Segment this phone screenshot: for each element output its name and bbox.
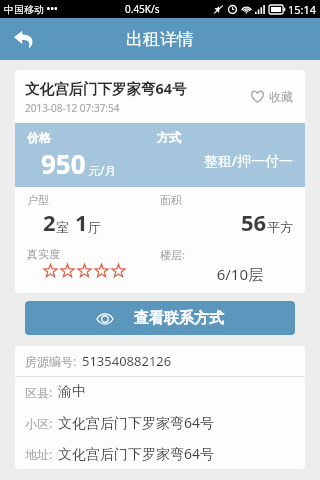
button[interactable]: 房源编号: [15,346,305,376]
staticText: 文化宫后门下罗家弯64号 [58,444,215,463]
staticText: 2 [43,207,56,237]
staticText: 1 [75,207,88,237]
staticText: 楼层: [160,247,185,262]
staticText: 2013-08-12 07:37:54 [25,101,120,115]
staticText: 出租详情 [126,29,194,50]
button[interactable]: 区县: [15,377,305,407]
staticText: 价格 [27,130,51,145]
staticText: 真实度 [27,247,60,261]
staticText: 0.45K/s [125,2,160,16]
staticText: 元/月 [88,162,117,178]
button[interactable]: 地址: [15,438,305,469]
staticText: 室 [56,219,69,235]
button[interactable]: 小区: [15,407,305,438]
staticText: 小区: [25,415,53,431]
staticText: 56 [241,207,267,237]
button[interactable]: 查看联系方式 [25,301,295,335]
staticText: 中国移动 ••• [4,2,58,16]
staticText: 15:14 [288,2,317,17]
staticText: 文化宫后门下罗家弯64号 [25,78,187,98]
button[interactable]: Back [6,21,42,57]
staticText: 整租/押一付一 [157,151,293,170]
staticText: 平方 [267,219,293,235]
staticText: 文化宫后门下罗家弯64号 [58,413,215,432]
staticText: 方式 [157,130,181,145]
staticText: 950 [41,146,86,181]
staticText: 6/10层 [160,264,263,284]
staticText: 区县: [25,384,53,400]
staticText: 户型 [27,193,49,207]
staticText: 513540882126 [82,352,172,370]
staticText: 查看联系方式 [134,309,224,328]
staticText: 房源编号: [25,353,77,369]
staticText: 面积 [160,193,182,207]
staticText: 厅 [88,219,101,235]
staticText: 收藏 [269,89,293,104]
button[interactable]: 收藏 [246,85,295,108]
staticText: 地址: [25,446,53,462]
staticText: 渝中 [58,383,86,401]
